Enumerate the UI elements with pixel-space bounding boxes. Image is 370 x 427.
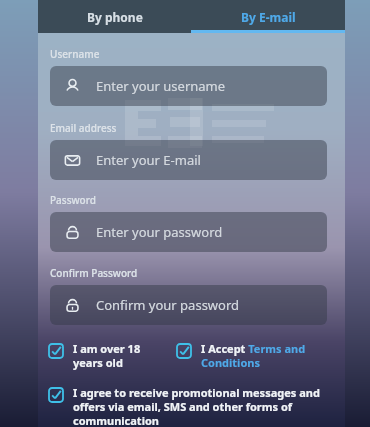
staticText: Password [50, 193, 96, 207]
button[interactable]: Enter your E-mail [50, 140, 327, 180]
staticText: Email address [50, 121, 117, 135]
button[interactable]: Checked [48, 386, 342, 427]
button[interactable]: Checked [48, 342, 168, 371]
other: Checked [176, 343, 192, 359]
other: Checked [48, 343, 64, 359]
staticText: I am over 18 years old [73, 341, 141, 370]
button[interactable]: Enter your password [50, 212, 327, 252]
staticText: Username [50, 47, 100, 61]
button[interactable]: By E-mail [191, 0, 345, 33]
button[interactable]: Enter your username [50, 66, 327, 106]
staticText: Confirm Password [50, 266, 138, 280]
staticText: I Accept Terms and Conditions [201, 341, 342, 370]
other: Checked [48, 387, 64, 403]
staticText: Enter your E-mail [96, 151, 201, 169]
staticText: I agree to receive promotional messages … [73, 385, 342, 426]
staticText: By E-mail [241, 9, 296, 25]
button[interactable]: Confirm your password [50, 285, 327, 325]
staticText: Enter your username [96, 77, 226, 95]
button[interactable]: By phone [38, 0, 191, 33]
button[interactable]: Checked [176, 342, 342, 371]
staticText: By phone [87, 9, 143, 25]
staticText: Enter your password [96, 223, 223, 241]
staticText: Confirm your password [96, 296, 240, 314]
